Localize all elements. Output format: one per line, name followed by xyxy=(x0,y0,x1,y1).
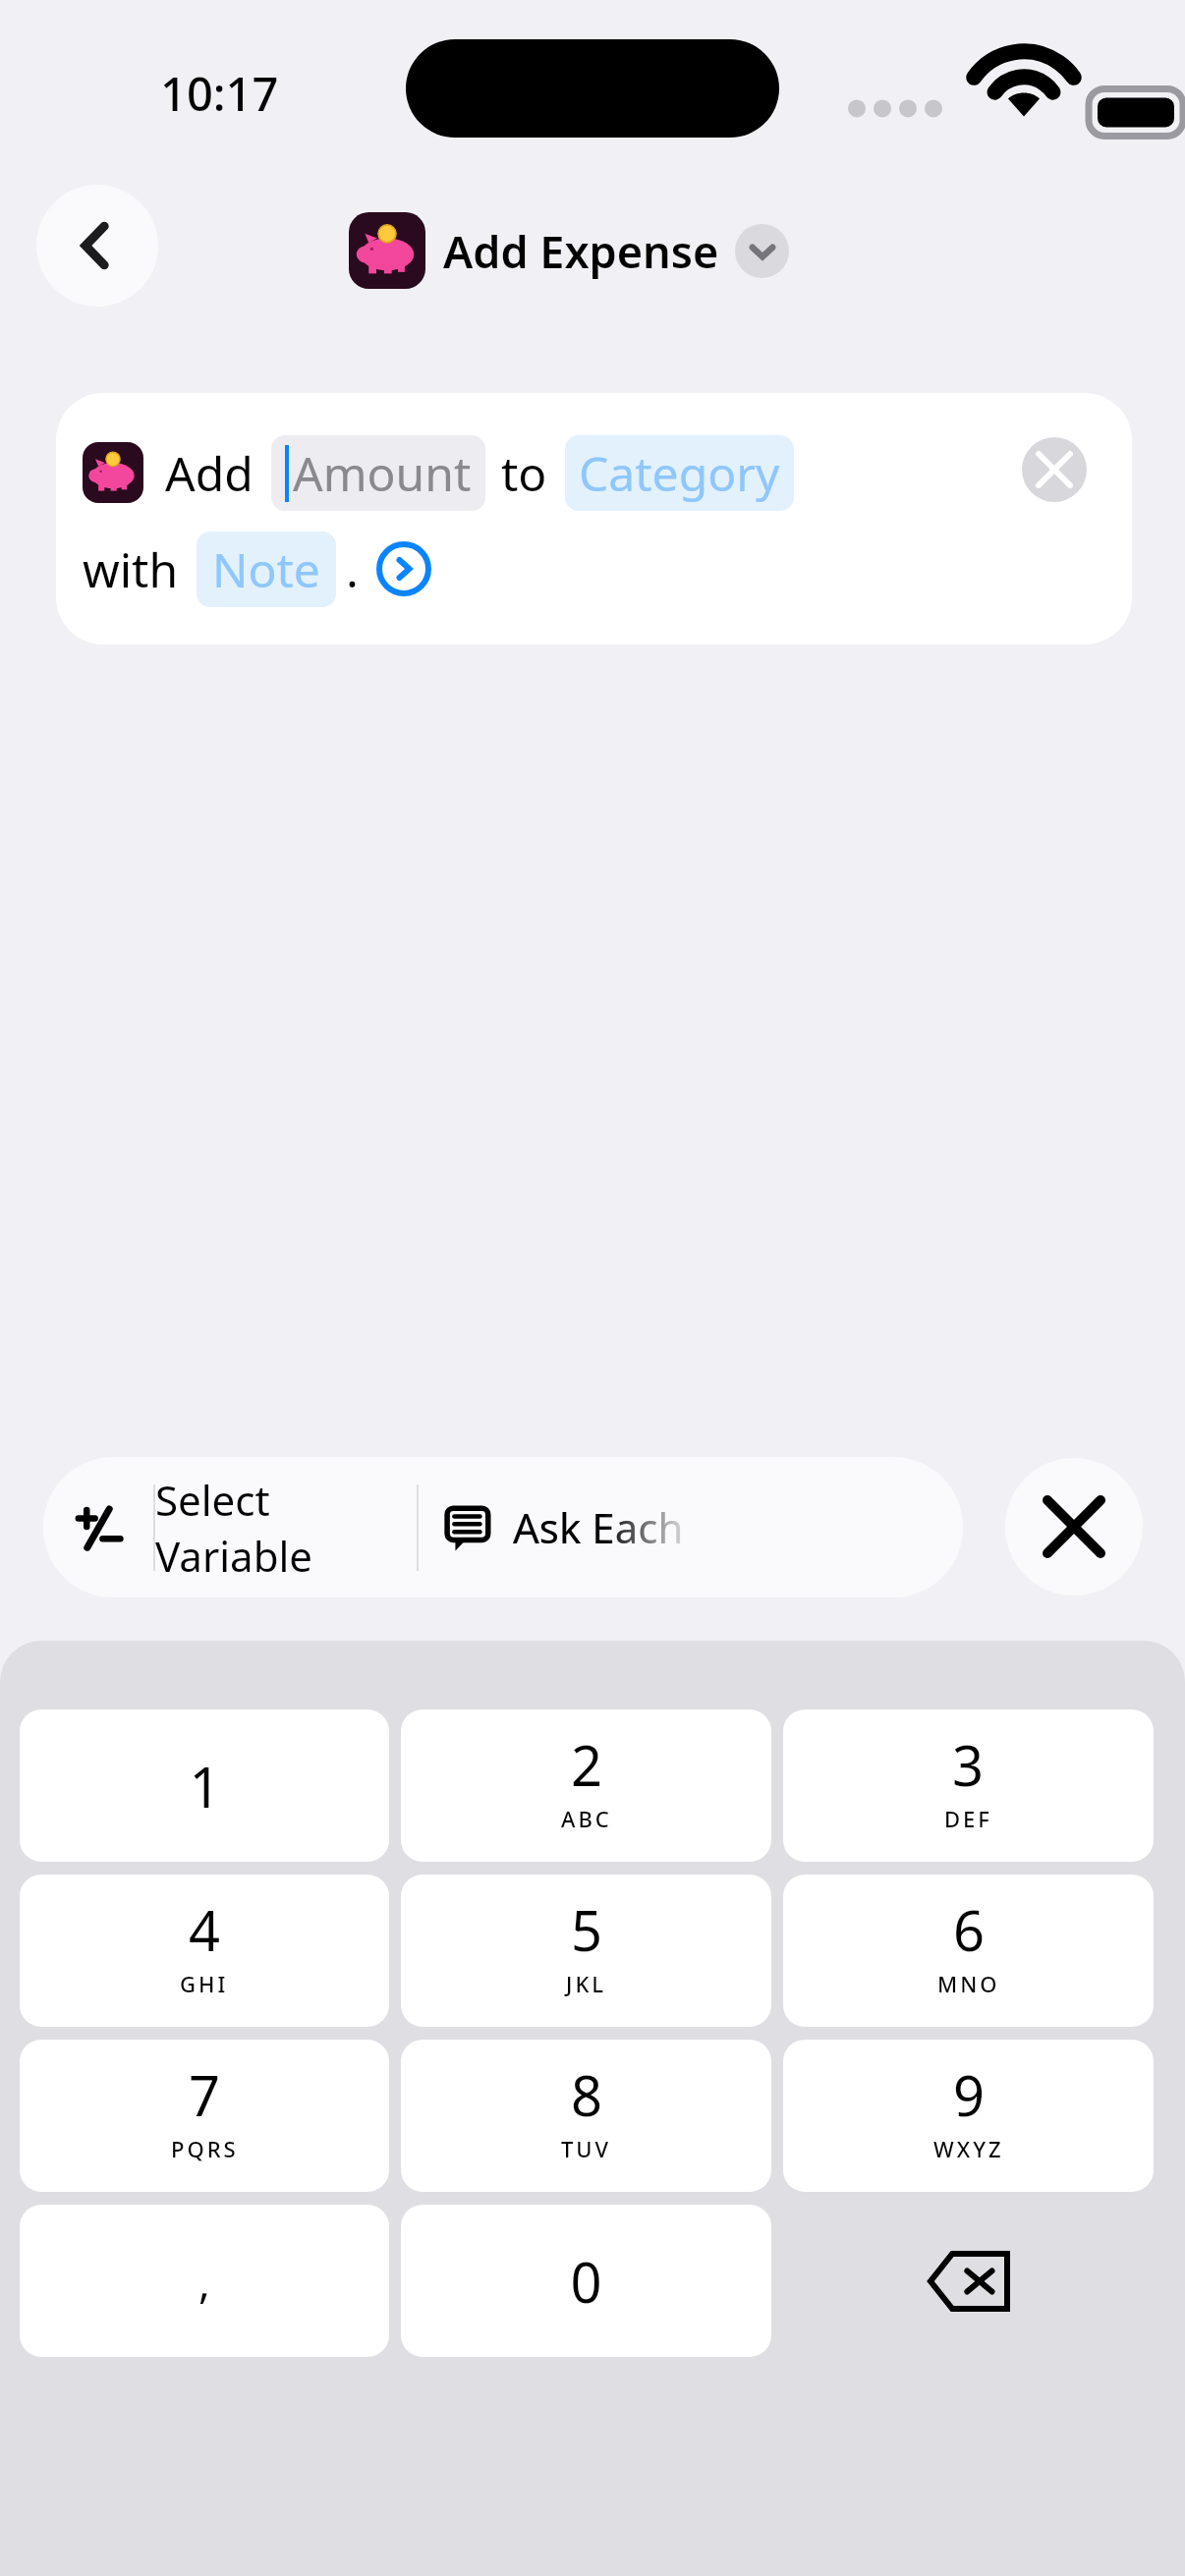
button[interactable]: Close keyboard xyxy=(1005,1458,1143,1596)
button[interactable]: Select Variable xyxy=(155,1457,417,1597)
staticText: with xyxy=(83,537,179,601)
button[interactable]: 5 xyxy=(401,1875,771,2027)
button[interactable]: Ask Each xyxy=(444,1457,963,1597)
staticText: GHI xyxy=(180,1969,229,1998)
staticText: 2 xyxy=(571,1727,603,1802)
staticText: 6 xyxy=(953,1892,986,1967)
staticText: 7 xyxy=(189,2057,221,2132)
button[interactable]: Toggle sign xyxy=(43,1457,153,1597)
button[interactable]: Continue xyxy=(376,541,431,596)
staticText: 3 xyxy=(952,1727,985,1802)
staticText: 9 xyxy=(953,2057,986,2132)
button[interactable]: , xyxy=(20,2205,389,2357)
button[interactable]: Backspace xyxy=(783,2205,1154,2357)
button[interactable]: 2 xyxy=(401,1709,771,1862)
button[interactable]: 6 xyxy=(783,1875,1154,2027)
staticText: 8 xyxy=(571,2057,603,2132)
staticText: Select Variable xyxy=(155,1472,417,1584)
staticText: 1 xyxy=(189,1749,221,1823)
staticText: . xyxy=(346,537,359,601)
button[interactable]: 1 xyxy=(20,1709,389,1862)
button[interactable]: 7 xyxy=(20,2040,389,2192)
staticText: Amount xyxy=(293,441,472,505)
button[interactable]: 0 xyxy=(401,2205,771,2357)
staticText: JKL xyxy=(566,1969,607,1998)
staticText: TUV xyxy=(561,2134,612,2163)
staticText: , xyxy=(198,2252,210,2311)
button[interactable]: 3 xyxy=(783,1709,1154,1862)
staticText: ABC xyxy=(561,1804,612,1833)
staticText: Category xyxy=(579,441,780,505)
staticText: to xyxy=(501,441,547,505)
button[interactable]: Add xyxy=(56,393,1132,644)
button[interactable]: 9 xyxy=(783,2040,1154,2192)
button[interactable]: Clear xyxy=(1022,437,1087,502)
staticText: 5 xyxy=(571,1892,603,1967)
button[interactable]: Add Expense xyxy=(349,206,789,295)
staticText: Add Expense xyxy=(443,221,719,281)
staticText: DEF xyxy=(944,1804,992,1833)
button[interactable]: Amount xyxy=(285,441,472,505)
staticText: 4 xyxy=(189,1892,221,1967)
staticText: Add xyxy=(165,441,254,505)
button[interactable]: Note xyxy=(212,537,320,601)
button[interactable]: 8 xyxy=(401,2040,771,2192)
staticText: WXYZ xyxy=(933,2134,1004,2163)
staticText: Ask Each xyxy=(513,1499,684,1555)
button[interactable]: Back xyxy=(36,185,158,307)
staticText: PQRS xyxy=(171,2134,239,2163)
staticText: 0 xyxy=(570,2244,602,2319)
button[interactable]: 4 xyxy=(20,1875,389,2027)
button[interactable]: Category xyxy=(579,441,780,505)
staticText: Note xyxy=(212,537,320,601)
staticText: 10:17 xyxy=(160,62,279,125)
staticText: MNO xyxy=(937,1969,1000,1998)
